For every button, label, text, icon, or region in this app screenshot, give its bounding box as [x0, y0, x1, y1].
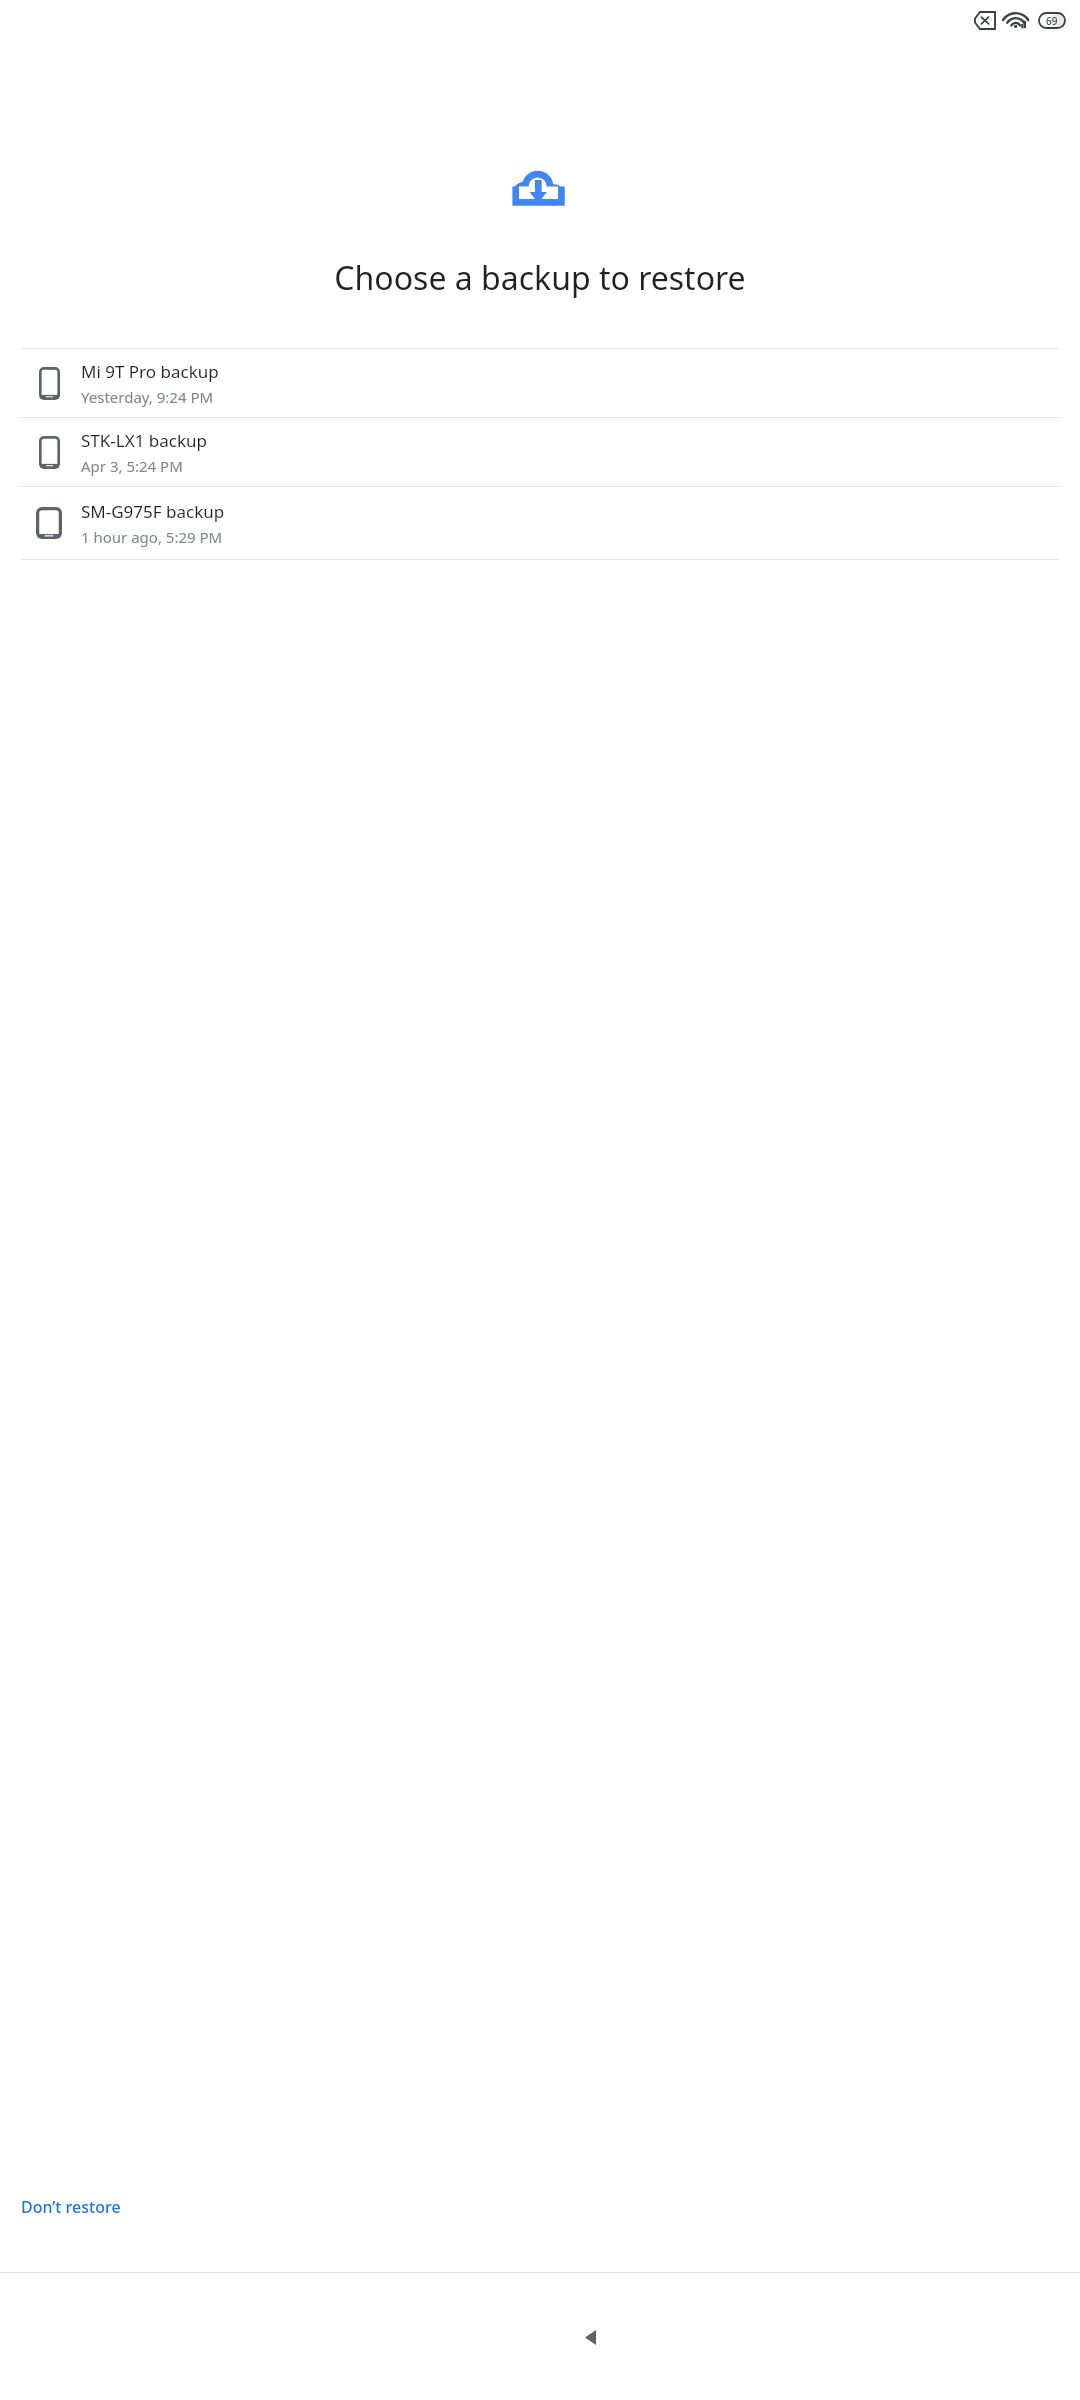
- button[interactable]: SM-G975F backup: [0, 487, 1080, 559]
- button[interactable]: Back: [562, 2309, 618, 2365]
- button[interactable]: STK-LX1 backup: [0, 418, 1080, 486]
- staticText: 69: [1046, 14, 1058, 28]
- staticText: STK-LX1 backup: [81, 429, 207, 452]
- staticText: Yesterday, 9:24 PM: [81, 387, 214, 407]
- button[interactable]: Mi 9T Pro backup: [0, 349, 1080, 417]
- staticText: SM-G975F backup: [81, 500, 225, 523]
- staticText: Choose a backup to restore: [0, 256, 1080, 300]
- staticText: Apr 3, 5:24 PM: [81, 456, 183, 476]
- staticText: 1 hour ago, 5:29 PM: [81, 527, 223, 547]
- button[interactable]: Don’t restore: [0, 2186, 141, 2228]
- staticText: Mi 9T Pro backup: [81, 360, 219, 383]
- staticText: Don’t restore: [21, 2196, 121, 2218]
